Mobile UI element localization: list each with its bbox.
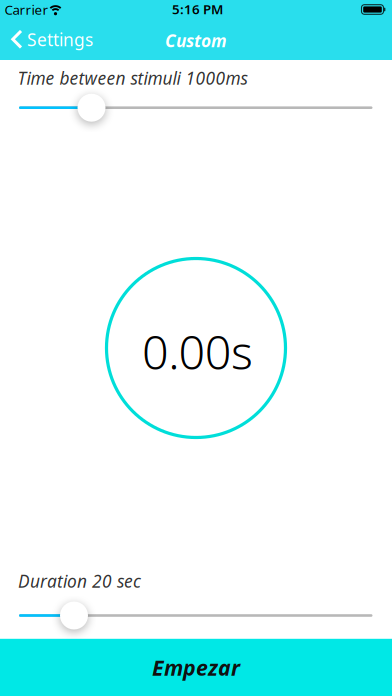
staticText: 0.00s (142, 320, 253, 382)
staticText: Settings (27, 28, 93, 51)
staticText: Carrier (4, 1, 48, 18)
staticText: Duration 20 sec (18, 569, 141, 592)
staticText: Empezar (152, 653, 240, 681)
staticText: Custom (165, 29, 227, 52)
button[interactable]: Empezar (0, 639, 392, 696)
staticText: 5:16 PM (172, 0, 223, 18)
button[interactable]: Settings (11, 28, 93, 51)
staticText: Time between stimuli 1000ms (17, 66, 247, 89)
